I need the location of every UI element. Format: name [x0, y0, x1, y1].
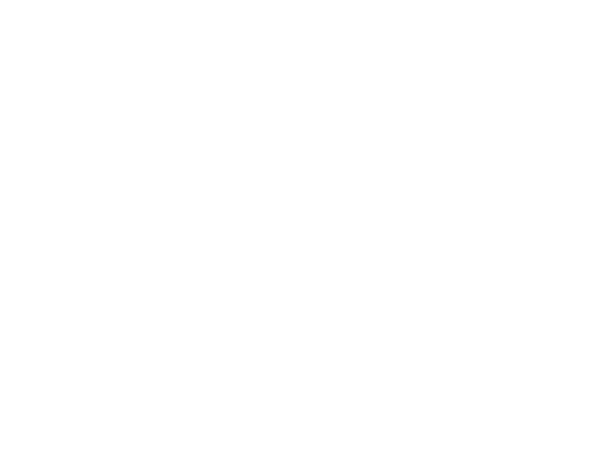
staticText: Distance: [218, 10, 371, 46]
staticText: Time: [252, 342, 338, 378]
staticText: 31m 47s: [149, 386, 440, 450]
staticText: 3.78 km: [156, 54, 432, 125]
staticText: Pace: [253, 176, 336, 212]
staticText: 8:24 /km: [136, 220, 453, 291]
